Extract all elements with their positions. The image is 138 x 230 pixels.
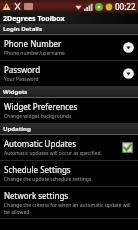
staticText: Phone Number bbox=[4, 38, 62, 49]
staticText: Password bbox=[4, 64, 41, 75]
staticText: Schedule Settings bbox=[4, 164, 71, 175]
button[interactable]: Open list bbox=[122, 41, 135, 54]
button[interactable]: Automatic Updates bbox=[0, 135, 138, 160]
staticText: Your Password bbox=[4, 76, 39, 83]
staticText: Widgets bbox=[3, 88, 28, 96]
staticText: Widget Preferences bbox=[4, 101, 78, 112]
button[interactable]: Phone Number bbox=[0, 35, 138, 60]
staticText: Network settings bbox=[4, 190, 69, 201]
button[interactable]: Schedule Settings bbox=[0, 161, 138, 186]
staticText: Automatic updates will occur as specifie… bbox=[4, 150, 102, 157]
staticText: Login Details bbox=[3, 25, 42, 33]
staticText: Phone number/username bbox=[4, 50, 65, 57]
staticText: 2Degrees Toolbox bbox=[3, 14, 65, 24]
staticText: Change the update schedule settings bbox=[4, 176, 92, 183]
staticText: Change widget backgrounds bbox=[4, 113, 72, 120]
button[interactable]: Widget Preferences bbox=[0, 98, 138, 123]
staticText: Automatic Updates bbox=[4, 138, 77, 149]
button[interactable]: Network settings bbox=[0, 187, 138, 218]
staticText: Change the criteria for when an automati… bbox=[4, 202, 135, 215]
staticText: 00:22 bbox=[115, 1, 136, 12]
button[interactable]: Password bbox=[0, 61, 138, 86]
staticText: Updating bbox=[3, 125, 31, 133]
button[interactable]: Open list bbox=[122, 67, 135, 80]
button[interactable]: Automatic Updates toggle bbox=[120, 140, 135, 155]
